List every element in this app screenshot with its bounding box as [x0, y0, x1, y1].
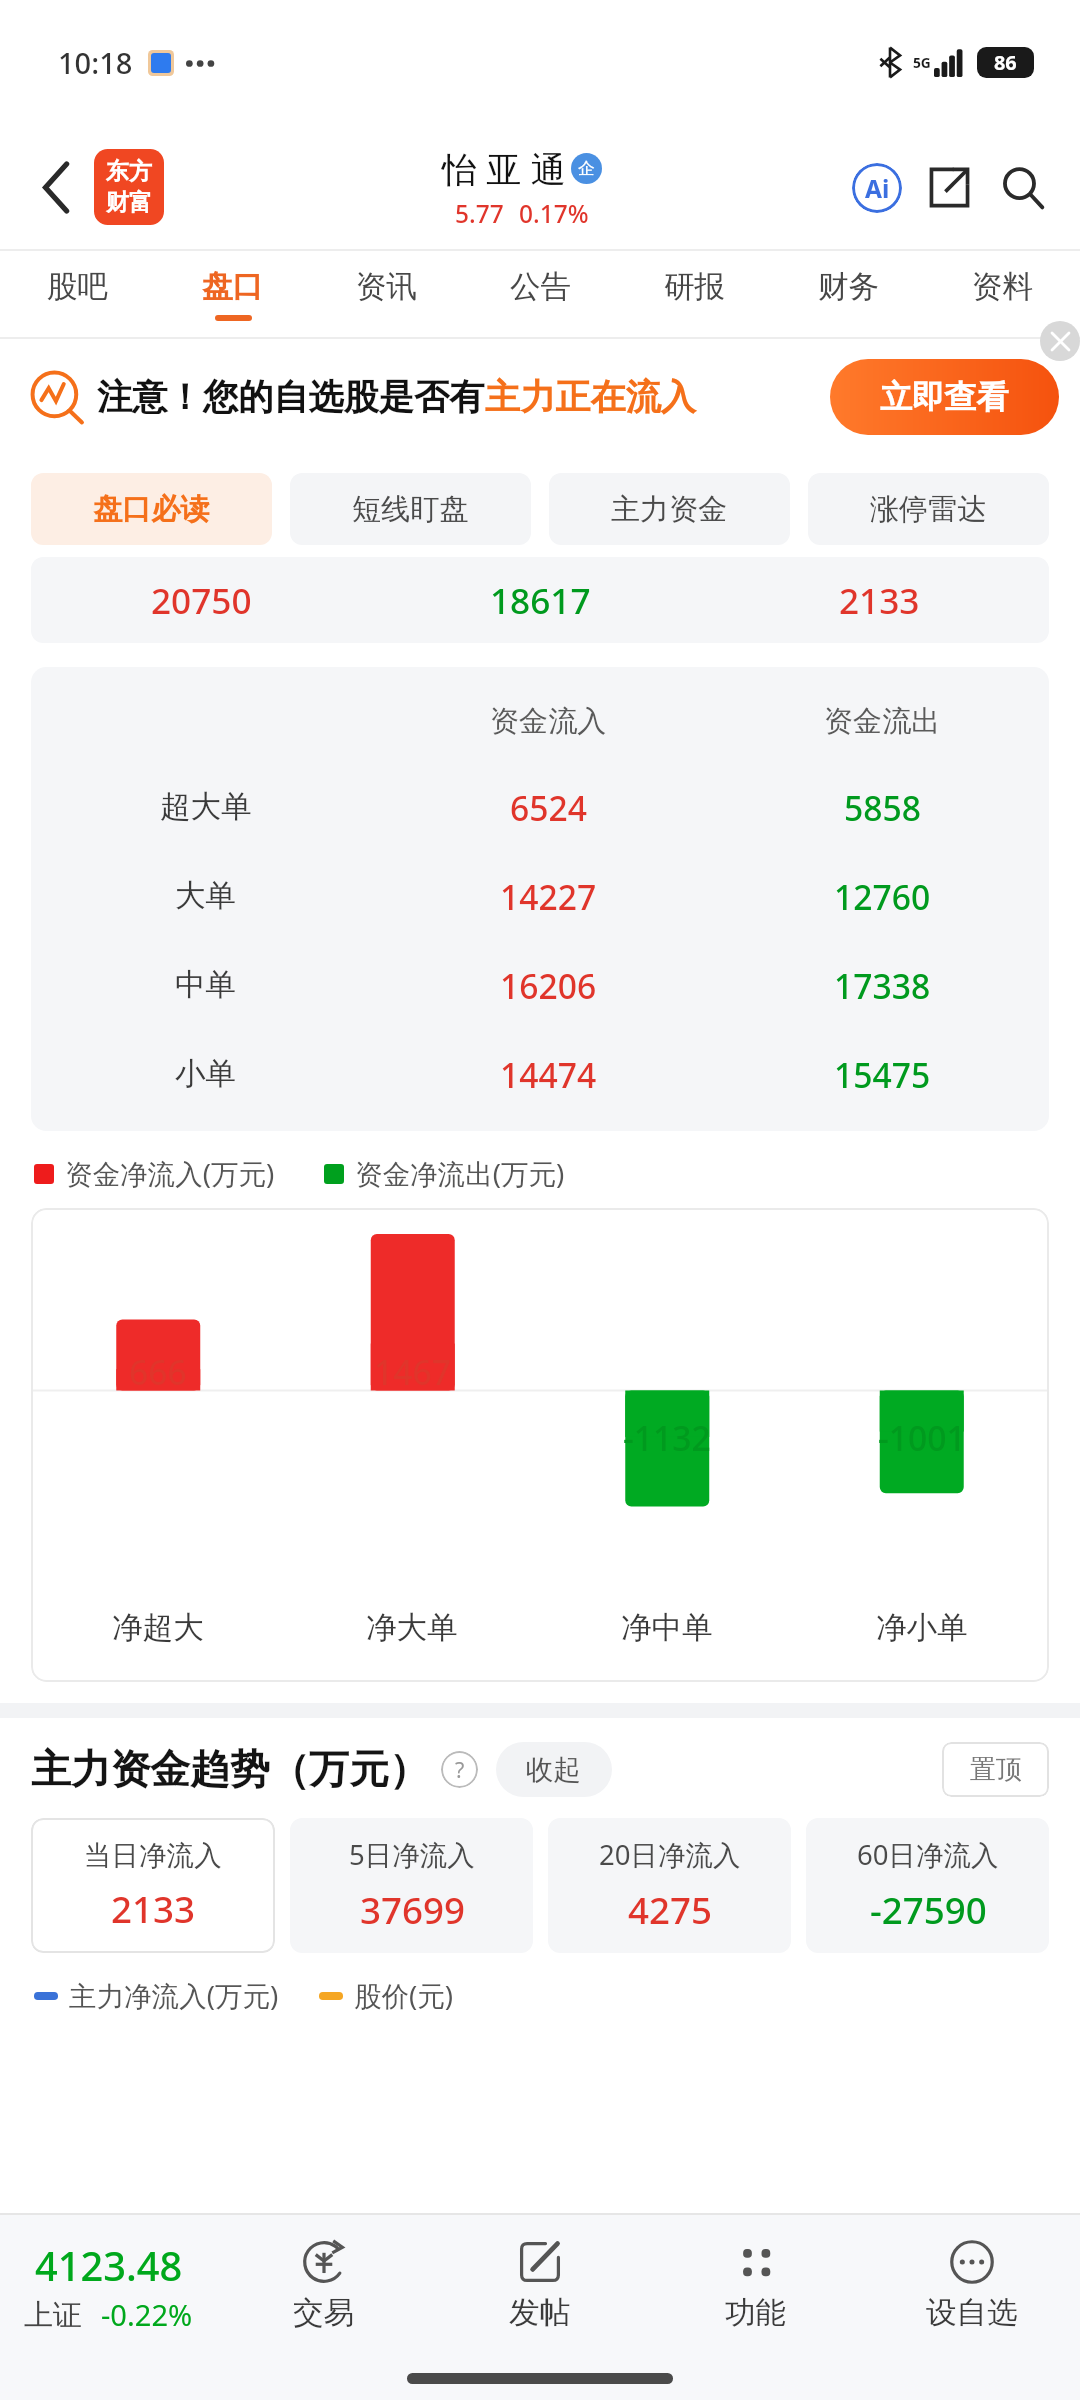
staticText: -1001: [878, 1415, 966, 1461]
staticText: 12760: [834, 874, 931, 920]
staticText: 公告: [510, 268, 572, 307]
staticText: 1467: [374, 1349, 451, 1395]
staticText: 功能: [725, 2294, 787, 2333]
staticText: 5日净流入: [349, 1836, 475, 1874]
staticText: 主力净流入(万元): [69, 1977, 279, 2015]
staticText: 设自选: [926, 2294, 1018, 2333]
staticText: 收起: [526, 1752, 582, 1787]
staticText: 短线盯盘: [352, 491, 469, 528]
staticText: 20750: [151, 576, 252, 624]
staticText: 您的自选股是否有: [203, 375, 485, 419]
staticText: 2133: [111, 1884, 195, 1934]
button[interactable]: 盘口: [155, 251, 310, 337]
staticText: 财务: [818, 268, 880, 307]
button[interactable]: Help: [441, 1751, 478, 1788]
staticText: ?: [455, 1755, 465, 1784]
staticText: 5.77: [455, 197, 504, 230]
staticText: 注意！: [97, 375, 203, 419]
staticText: 16206: [500, 963, 597, 1009]
staticText: -1132: [623, 1415, 711, 1461]
button[interactable]: 短线盯盘: [290, 473, 531, 545]
staticText: 发帖: [509, 2294, 571, 2333]
staticText: 主力正在流入: [485, 375, 697, 419]
button[interactable]: 当日净流入: [31, 1818, 275, 1953]
staticText: 中单: [175, 966, 237, 1005]
button[interactable]: 设自选: [864, 2215, 1080, 2357]
button[interactable]: 收起: [496, 1742, 612, 1797]
staticText: -27590: [870, 1885, 987, 1935]
staticText: 14227: [500, 874, 597, 920]
button[interactable]: 东方财富: [94, 149, 164, 225]
button[interactable]: 研报: [618, 251, 772, 337]
staticText: 净小单: [876, 1609, 968, 1648]
button[interactable]: Back: [21, 152, 91, 222]
staticText: 资料: [972, 268, 1034, 307]
button[interactable]: 资料: [926, 251, 1080, 337]
button[interactable]: 4123.48: [0, 2215, 216, 2357]
button[interactable]: 60日净流入: [806, 1818, 1049, 1953]
staticText: 资金流入: [490, 703, 607, 740]
button[interactable]: 主力资金: [549, 473, 790, 545]
staticText: 立即查看: [880, 377, 1009, 417]
staticText: 37699: [360, 1885, 465, 1935]
button[interactable]: Search: [986, 151, 1059, 224]
staticText: 交易: [293, 2294, 355, 2333]
staticText: 怡 亚 通: [442, 144, 566, 192]
staticText: 0.17%: [519, 197, 589, 230]
staticText: 14474: [500, 1052, 597, 1098]
button[interactable]: 财务: [772, 251, 926, 337]
staticText: 股吧: [47, 268, 109, 307]
button[interactable]: Close: [1040, 321, 1080, 361]
staticText: 4123.48: [35, 2238, 183, 2292]
staticText: 资金流出: [824, 703, 941, 740]
button[interactable]: AI: [840, 151, 913, 224]
button[interactable]: 股吧: [0, 251, 155, 337]
button[interactable]: 功能: [648, 2215, 864, 2357]
staticText: 资金净流出(万元): [355, 1155, 565, 1193]
staticText: 资讯: [356, 268, 418, 307]
button[interactable]: 盘口必读: [31, 473, 272, 545]
staticText: 86: [994, 49, 1017, 76]
staticText: 5858: [844, 785, 921, 831]
button[interactable]: 5日净流入: [290, 1818, 533, 1953]
staticText: 涨停雷达: [870, 491, 987, 528]
staticText: 股价(元): [354, 1977, 454, 2015]
button[interactable]: Share: [913, 151, 986, 224]
staticText: 20日净流入: [599, 1836, 741, 1874]
staticText: 净超大: [112, 1609, 204, 1648]
button[interactable]: 涨停雷达: [808, 473, 1049, 545]
staticText: 财富: [106, 188, 152, 217]
staticText: 置顶: [970, 1753, 1022, 1786]
button[interactable]: 立即查看: [830, 359, 1059, 435]
staticText: 6524: [510, 785, 587, 831]
staticText: 2133: [839, 576, 920, 624]
button[interactable]: 发帖: [432, 2215, 648, 2357]
staticText: 5G: [913, 53, 931, 72]
button[interactable]: 20日净流入: [548, 1818, 791, 1953]
staticText: Ai: [865, 172, 890, 205]
staticText: 60日净流入: [857, 1836, 999, 1874]
button[interactable]: 交易: [216, 2215, 432, 2357]
staticText: 上证: [24, 2297, 83, 2334]
button[interactable]: 资讯: [310, 251, 464, 337]
staticText: 净中单: [621, 1609, 713, 1648]
staticText: 研报: [664, 268, 726, 307]
staticText: 10:18: [58, 43, 133, 83]
staticText: 666: [129, 1349, 187, 1395]
staticText: 大单: [175, 877, 237, 916]
staticText: 17338: [834, 963, 931, 1009]
staticText: 主力资金: [611, 491, 728, 528]
staticText: 东方: [106, 157, 152, 186]
staticText: 主力资金趋势（万元）: [31, 1745, 429, 1795]
staticText: 4275: [628, 1885, 712, 1935]
staticText: 当日净流入: [84, 1838, 222, 1873]
staticText: 15475: [834, 1052, 931, 1098]
staticText: 18617: [490, 576, 591, 624]
staticText: -0.22%: [101, 2295, 193, 2335]
staticText: 净大单: [366, 1609, 458, 1648]
staticText: 资金净流入(万元): [65, 1155, 275, 1193]
staticText: 盘口: [202, 268, 264, 307]
button[interactable]: 公告: [464, 251, 618, 337]
staticText: 超大单: [160, 788, 252, 827]
button[interactable]: 置顶: [942, 1742, 1049, 1797]
